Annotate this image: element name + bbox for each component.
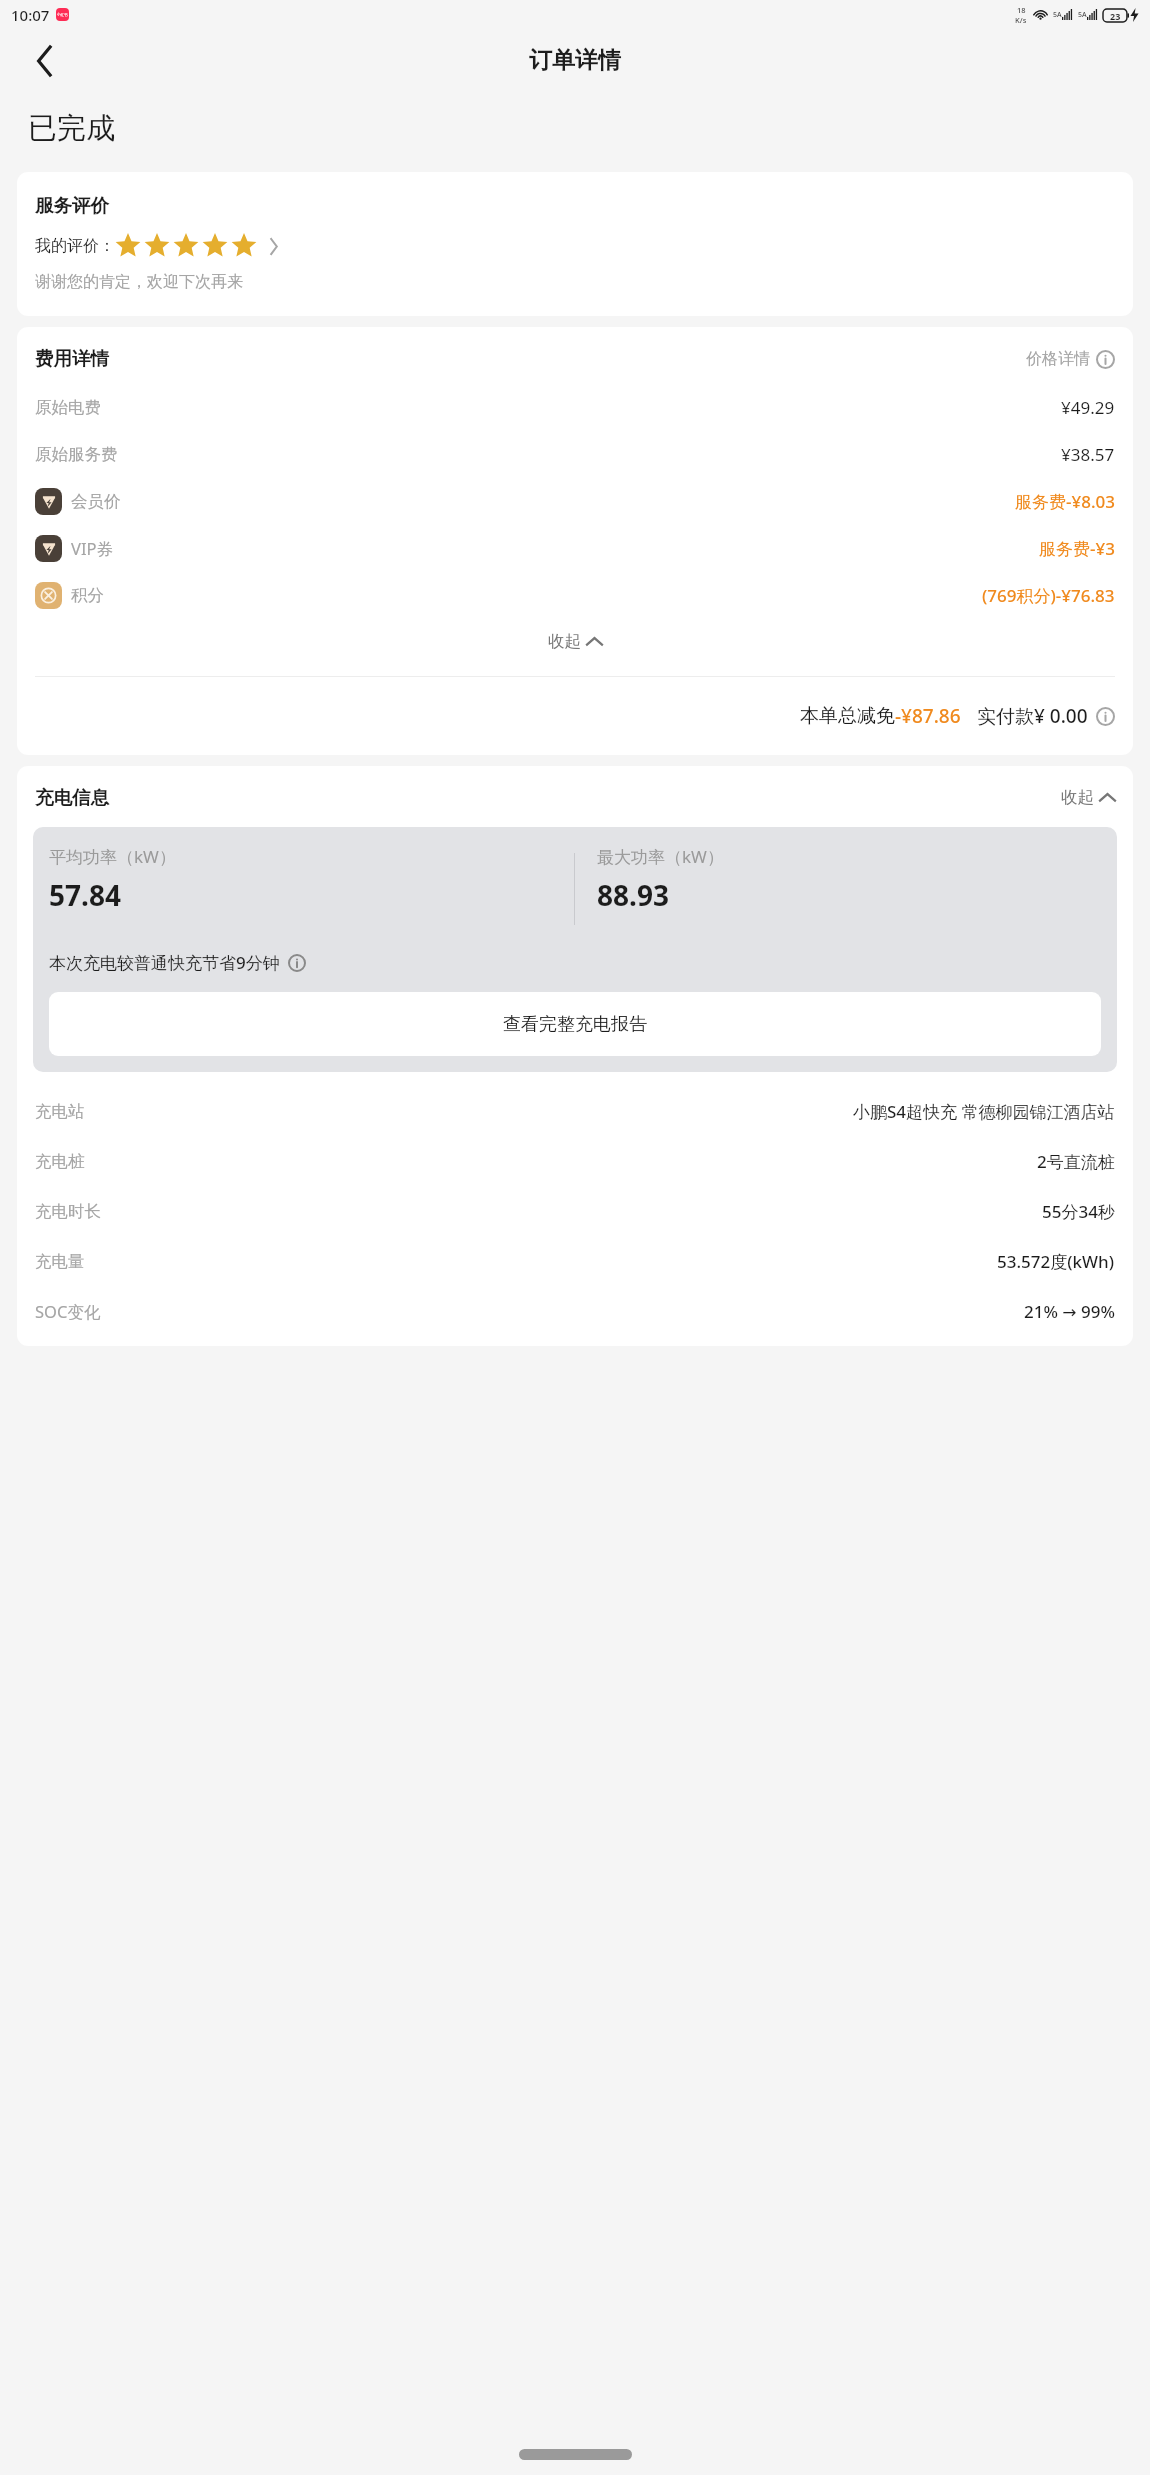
staticText: 小鹏S4超快充 常德柳园锦江酒店站 bbox=[853, 1100, 1115, 1123]
staticText: 2号直流桩 bbox=[1037, 1150, 1115, 1173]
staticText: 21% → 99% bbox=[1024, 1300, 1115, 1323]
staticText: 服务评价 bbox=[35, 194, 109, 217]
staticText: 57.84 bbox=[49, 876, 121, 914]
staticText: 小红书 bbox=[57, 13, 68, 17]
staticText: 谢谢您的肯定，欢迎下次再来 bbox=[35, 272, 243, 292]
button[interactable]: 收起 bbox=[1061, 787, 1115, 808]
staticText: 平均功率（kW） bbox=[49, 845, 176, 868]
staticText: 本单总减免 bbox=[800, 704, 895, 728]
staticText: 充电站 bbox=[35, 1101, 85, 1122]
staticText: 我的评价： bbox=[35, 236, 115, 256]
button[interactable]: 价格详情 bbox=[1026, 349, 1115, 369]
staticText: 费用详情 bbox=[35, 347, 109, 370]
staticText: (769积分)-¥76.83 bbox=[982, 584, 1115, 607]
button[interactable]: Back bbox=[22, 38, 68, 84]
staticText: 充电信息 bbox=[35, 786, 109, 809]
staticText: VIP券 bbox=[71, 537, 113, 560]
staticText: 已完成 bbox=[28, 110, 115, 147]
staticText: 88.93 bbox=[597, 876, 669, 914]
staticText: 原始服务费 bbox=[35, 444, 118, 465]
staticText: 查看完整充电报告 bbox=[503, 1013, 647, 1036]
staticText: 充电时长 bbox=[35, 1201, 101, 1222]
staticText: 最大功率（kW） bbox=[597, 845, 724, 868]
staticText: SOC变化 bbox=[35, 1300, 101, 1323]
staticText: 收起 bbox=[1061, 787, 1094, 808]
staticText: 充电量 bbox=[35, 1251, 85, 1272]
staticText: 会员价 bbox=[71, 491, 121, 512]
staticText: 服务费-¥8.03 bbox=[1015, 490, 1115, 513]
staticText: 本次充电较普通快充节省9分钟 bbox=[49, 951, 280, 974]
staticText: 价格详情 bbox=[1026, 349, 1090, 369]
staticText: 积分 bbox=[71, 585, 104, 606]
staticText: 订单详情 bbox=[529, 46, 621, 75]
staticText: 53.572度(kWh) bbox=[997, 1250, 1115, 1273]
staticText: 10:07 bbox=[11, 5, 50, 25]
staticText: 5A bbox=[1078, 10, 1087, 20]
staticText: 实付款¥ 0.00 bbox=[977, 703, 1088, 729]
staticText: 服务费-¥3 bbox=[1039, 537, 1115, 560]
staticText: 充电桩 bbox=[35, 1151, 85, 1172]
staticText: 23 bbox=[1110, 10, 1121, 22]
staticText: K/s bbox=[1015, 15, 1027, 25]
staticText: ¥38.57 bbox=[1061, 443, 1115, 466]
button[interactable]: 收起 bbox=[17, 625, 1133, 658]
staticText: -¥87.86 bbox=[895, 703, 961, 729]
staticText: 18 bbox=[1017, 5, 1026, 15]
staticText: 55分34秒 bbox=[1042, 1200, 1115, 1223]
staticText: ¥49.29 bbox=[1061, 396, 1115, 419]
staticText: 5A bbox=[1053, 10, 1062, 20]
staticText: 原始电费 bbox=[35, 397, 101, 418]
button[interactable]: 查看完整充电报告 bbox=[49, 992, 1101, 1056]
staticText: 收起 bbox=[548, 631, 581, 652]
button[interactable]: 我的评价： bbox=[17, 231, 1133, 261]
